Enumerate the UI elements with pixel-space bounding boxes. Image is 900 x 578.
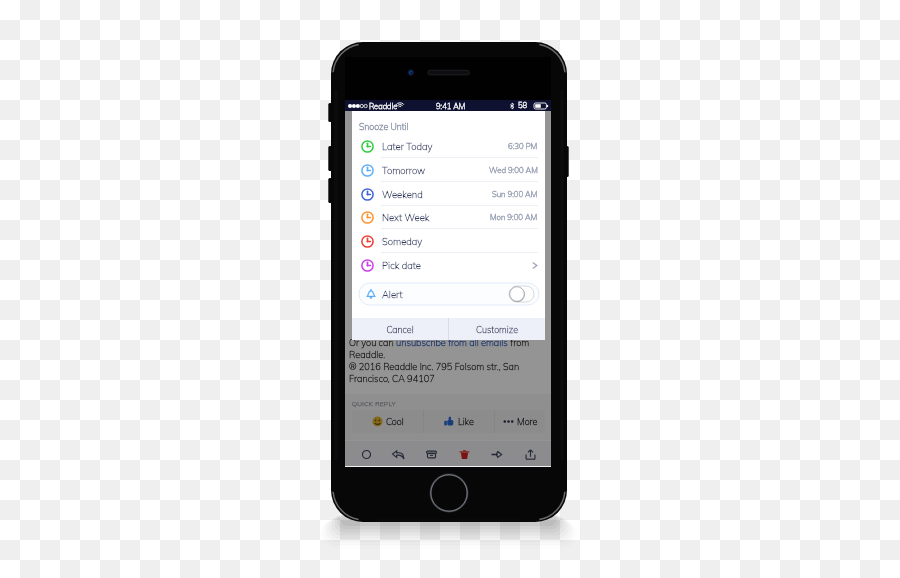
button[interactable]: Reply <box>392 448 405 461</box>
staticText: 58 % <box>518 100 536 111</box>
button[interactable]: Weekend <box>352 182 545 206</box>
staticText: Cancel <box>386 324 414 335</box>
staticText: QUICK REPLY <box>352 400 396 408</box>
staticText: Wed 9:00 AM <box>489 165 538 175</box>
staticText: Cool <box>386 416 404 427</box>
button[interactable]: Cool <box>352 410 423 433</box>
staticText: Sun 9:00 AM <box>492 189 538 199</box>
button[interactable]: Cancel <box>352 318 448 340</box>
staticText: Snooze Until <box>359 121 409 132</box>
button[interactable]: Alert <box>359 283 539 305</box>
button[interactable]: Customize <box>449 318 545 340</box>
button[interactable]: Mark unread <box>360 448 373 461</box>
staticText: Cool <box>386 416 404 427</box>
staticText: from <box>508 337 530 349</box>
staticText: from <box>508 337 530 349</box>
staticText: Or you can <box>349 337 396 349</box>
staticText: Pick date <box>382 259 421 271</box>
button[interactable]: Next Week <box>352 205 545 229</box>
staticText: Readdle. <box>349 349 386 361</box>
staticText: Snooze Until <box>359 121 409 132</box>
button[interactable]: Tomorrow <box>352 158 545 182</box>
staticText: Or you can <box>349 337 396 349</box>
staticText: Tomorrow <box>382 164 426 176</box>
staticText: Like <box>458 416 474 427</box>
button[interactable]: Pick date <box>352 253 545 277</box>
staticText: Next Week <box>382 211 430 223</box>
staticText: 6:30 PM <box>508 141 538 151</box>
staticText: 6:30 PM <box>508 141 538 151</box>
staticText: Sun 9:00 AM <box>492 189 538 199</box>
staticText: Customize <box>476 324 518 335</box>
staticText: ® 2016 Readdle Inc. 795 Folsom str., San <box>349 361 520 373</box>
staticText: Mon 9:00 AM <box>490 212 538 222</box>
button[interactable]: Alert toggle <box>509 286 534 302</box>
button[interactable]: Like <box>424 410 494 433</box>
staticText: Weekend <box>382 188 423 200</box>
staticText: More <box>517 416 538 427</box>
staticText: Alert <box>382 288 403 300</box>
staticText: unsubscribe from all emails <box>396 337 508 349</box>
staticText: Mon 9:00 AM <box>490 212 538 222</box>
staticText: Wed 9:00 AM <box>489 165 538 175</box>
staticText: ® 2016 Readdle Inc. 795 Folsom str., San <box>349 361 520 373</box>
staticText: 9:41 AM <box>436 101 466 111</box>
button[interactable]: Forward <box>491 448 504 461</box>
staticText: QUICK REPLY <box>352 400 396 408</box>
button[interactable]: Delete <box>458 448 471 461</box>
button[interactable]: Someday <box>352 229 545 253</box>
button[interactable]: Later Today <box>352 134 545 158</box>
staticText: Francisco, CA 94107 <box>349 373 435 385</box>
staticText: More <box>517 416 538 427</box>
staticText: Like <box>458 416 474 427</box>
staticText: Readdle <box>369 101 398 111</box>
staticText: Someday <box>382 235 423 247</box>
button[interactable]: Share <box>524 448 537 461</box>
staticText: Francisco, CA 94107 <box>349 373 435 385</box>
staticText: unsubscribe from all emails <box>396 337 508 349</box>
button[interactable]: More <box>495 410 545 433</box>
staticText: Readdle. <box>349 349 386 361</box>
staticText: Later Today <box>382 140 433 152</box>
button[interactable]: Archive <box>425 448 438 461</box>
